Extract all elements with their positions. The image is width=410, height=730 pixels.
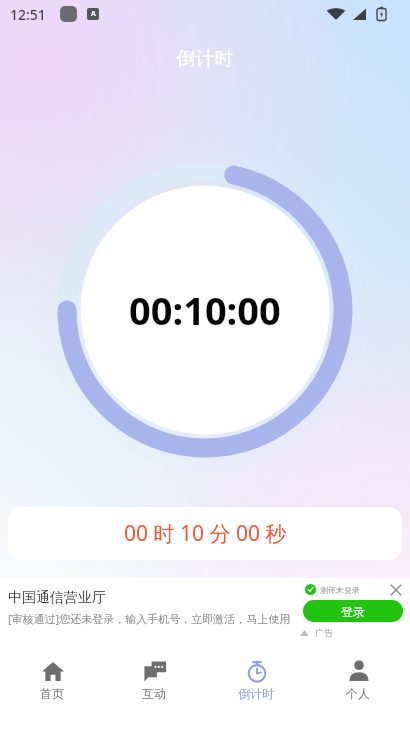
staticText: 倒计时	[238, 686, 274, 701]
button[interactable]: 个人	[308, 648, 408, 716]
staticText: 互动	[142, 686, 166, 701]
staticText: [审核通过]您还未登录，输入手机号，立即激活，马上使用	[8, 611, 291, 626]
staticText: 12:51	[10, 5, 46, 24]
button[interactable]: 00 时 10 分 00 秒	[8, 507, 402, 560]
button[interactable]: 首页	[2, 648, 102, 716]
button[interactable]: 倒计时	[206, 648, 306, 716]
staticText: 广告	[315, 627, 333, 638]
button[interactable]: Close ad	[388, 582, 404, 598]
button[interactable]: 登录	[303, 600, 403, 622]
button[interactable]: 互动	[104, 648, 204, 716]
staticText: 中国通信营业厅	[8, 589, 106, 607]
staticText: 倒计时	[0, 47, 410, 71]
staticText: 首页	[40, 686, 64, 701]
staticText: 00 时 10 分 00 秒	[124, 519, 287, 548]
staticText: 测评未登录	[320, 585, 360, 595]
staticText: 00:10:00	[129, 284, 281, 336]
staticText: 登录	[341, 604, 365, 619]
staticText: A	[91, 9, 96, 19]
staticText: 个人	[346, 686, 370, 701]
